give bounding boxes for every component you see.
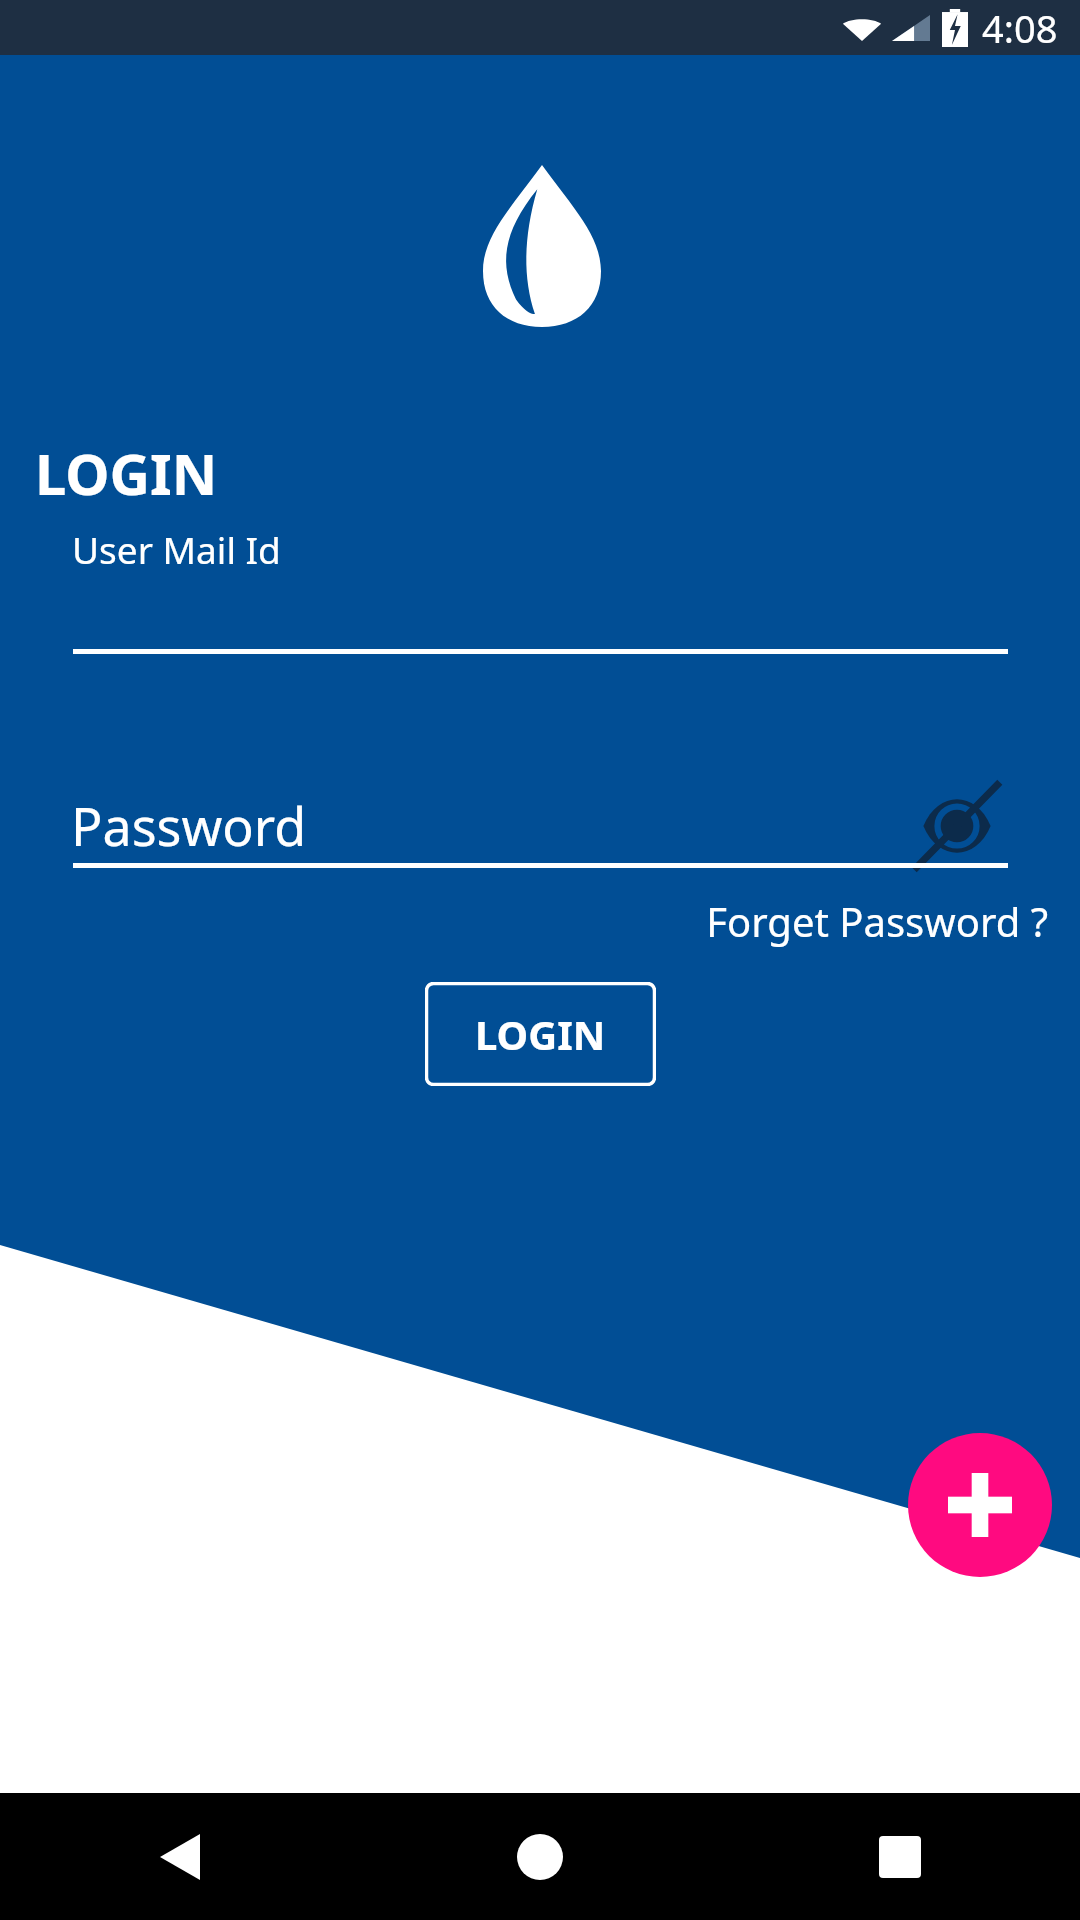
staticText: Password — [71, 790, 307, 861]
staticText: 4:08 — [982, 2, 1058, 54]
staticText: LOGIN — [475, 1007, 606, 1061]
staticText: LOGIN — [35, 435, 218, 511]
button[interactable]: LOGIN — [425, 982, 656, 1086]
staticText: Forget Password ? — [706, 894, 1048, 948]
staticText: User Mail Id — [72, 524, 281, 574]
button[interactable]: Toggle password visibility — [915, 790, 999, 862]
button[interactable]: Add — [908, 1433, 1052, 1577]
button[interactable]: Forget Password ? — [700, 890, 1054, 952]
button[interactable]: Back — [0, 1793, 360, 1920]
button[interactable]: Recent apps — [720, 1793, 1080, 1920]
button[interactable]: Home — [360, 1793, 720, 1920]
